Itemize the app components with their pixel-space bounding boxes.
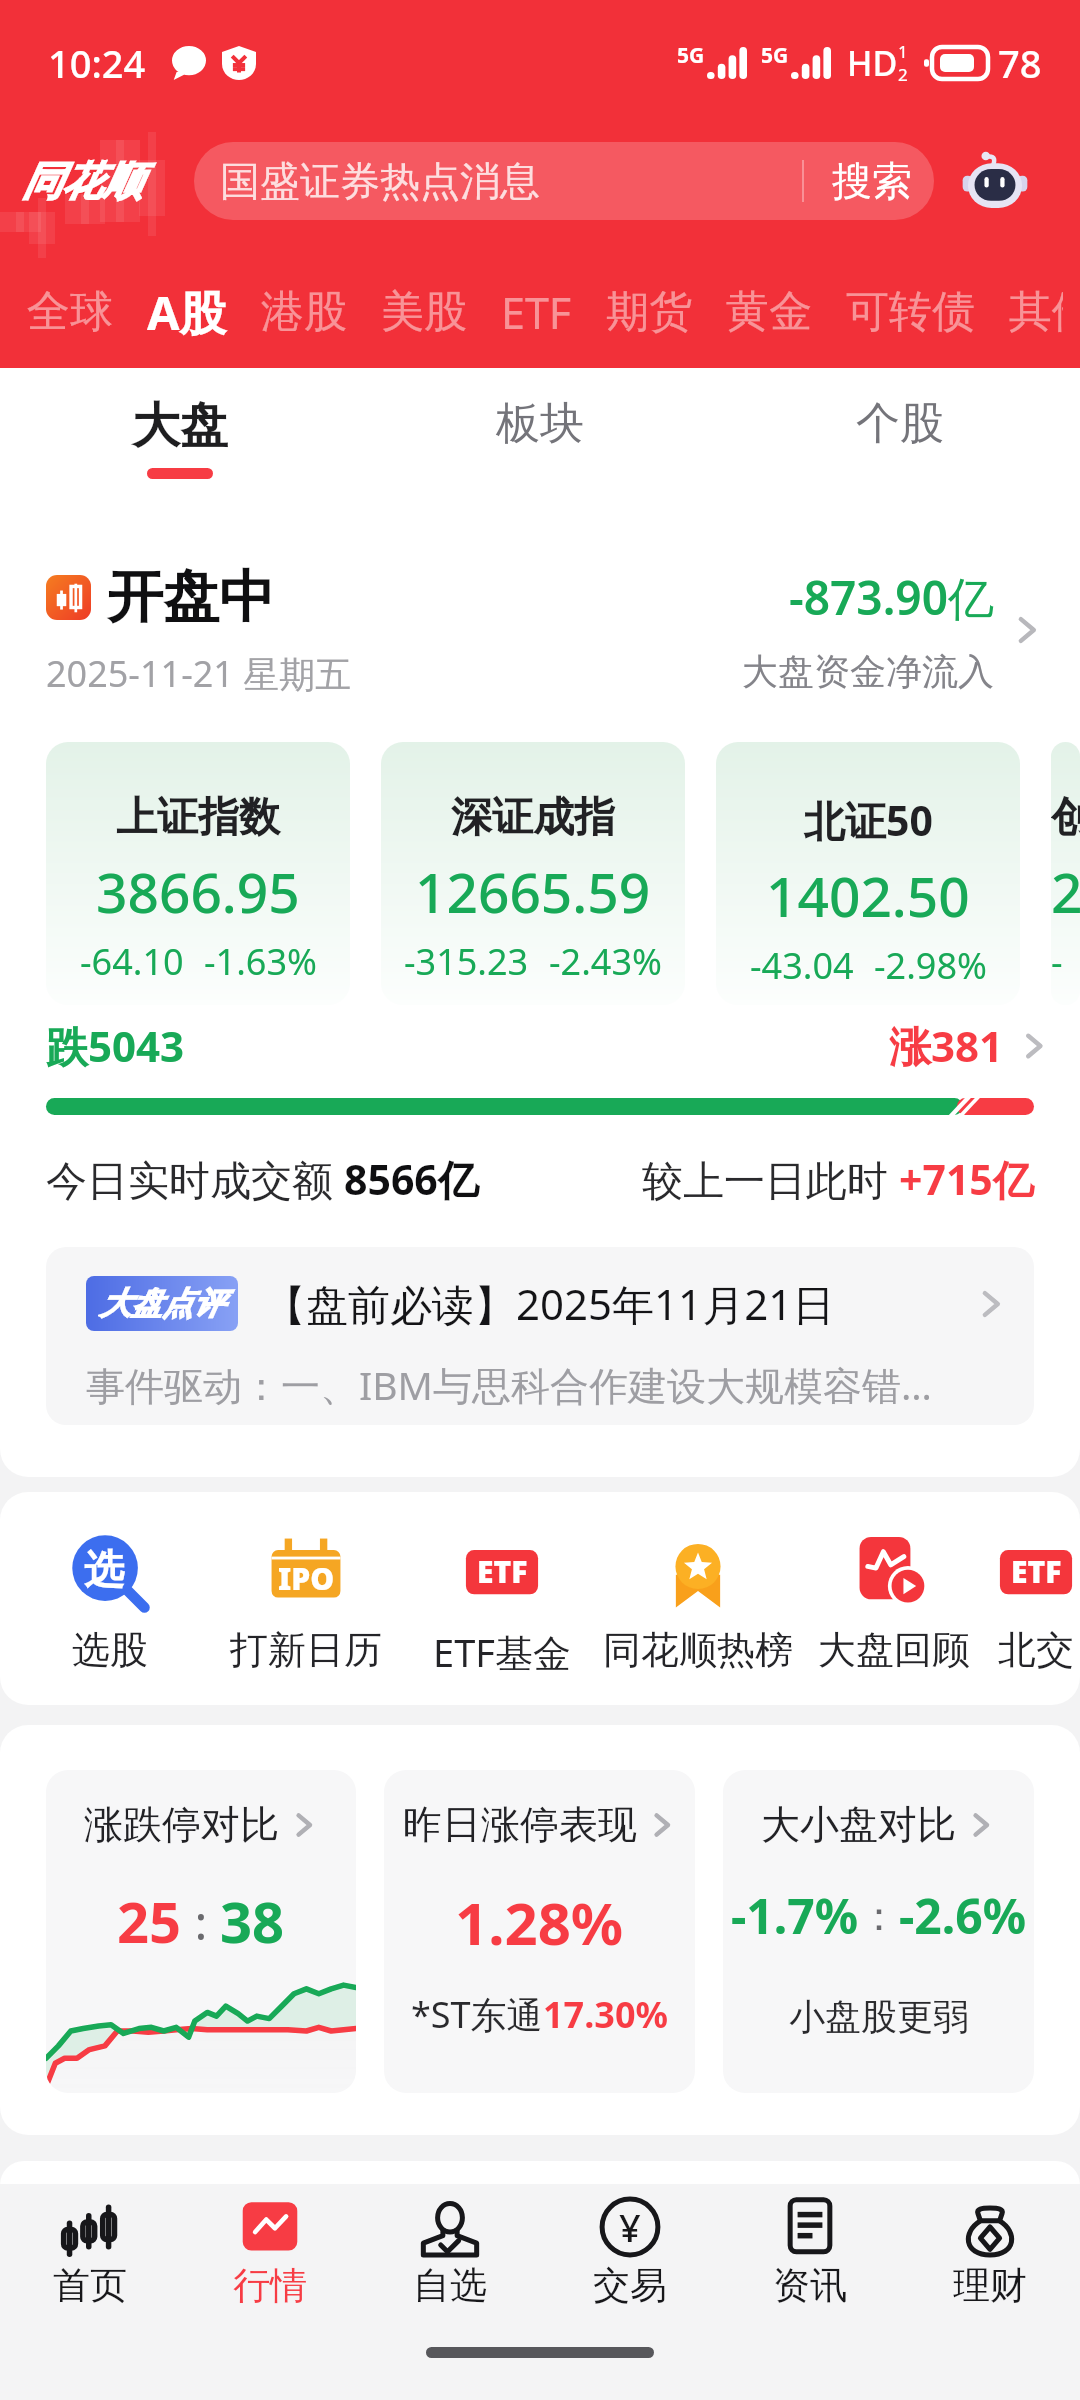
staticText: 北交 [998,1626,1074,1674]
staticText: 全球 [27,285,113,339]
staticText: 搜索 [832,156,912,206]
button[interactable]: AI assistant [958,144,1032,218]
button[interactable]: ETF [404,1532,600,1678]
staticText: 涨381 [889,1017,1004,1074]
staticText: 25 [117,1883,182,1959]
staticText: : [182,1889,220,1954]
staticText: 事件驱动：一、IBM与思科合作建设大规模容错… [86,1358,932,1411]
staticText: 10:24 [48,37,146,89]
button[interactable]: 大盘 [0,368,360,494]
button[interactable]: 选 [12,1532,208,1674]
staticText: 开盘中 [107,562,275,633]
button[interactable]: ETF [484,283,589,342]
staticText: 1402.50 [766,858,970,933]
button[interactable]: 跌5043 [46,1017,1050,1074]
staticText: 上证指数 [116,792,280,844]
staticText: -2.98% [874,941,987,990]
staticText: 可转债 [846,285,975,339]
staticText: 【盘前必读】2025年11月21日 [264,1275,835,1332]
staticText: 2 [1051,854,1080,929]
button[interactable]: 昨日涨停表现 [384,1770,695,2093]
staticText: 38 [220,1883,285,1959]
button[interactable]: 港股 [244,285,364,339]
button[interactable]: 黄金 [709,285,829,339]
staticText: 个股 [856,396,944,451]
button[interactable]: 涨跌停对比 [46,1770,356,2093]
button[interactable]: 其他 [992,285,1080,339]
staticText: 同花顺 [22,156,142,206]
staticText: 跌5043 [46,1017,185,1074]
button[interactable]: 板块 [360,368,720,494]
button[interactable]: 全球 [10,285,130,339]
staticText: -315.23 [404,937,529,986]
staticText: 大盘回顾 [818,1626,970,1674]
button[interactable]: 行情 [180,2184,360,2320]
button[interactable]: 自选 [360,2184,540,2320]
staticText: +715亿 [899,1151,1034,1207]
button[interactable]: 资讯 [720,2184,900,2320]
button[interactable]: ETF [992,1532,1080,1674]
staticText: 3866.95 [96,854,300,929]
staticText: 5G [761,41,789,70]
button[interactable]: 上证指数 [46,742,350,1005]
staticText: ¥ [619,2201,641,2253]
staticText: 5G [677,41,705,70]
button[interactable]: 深证成指 [381,742,685,1005]
staticText: 板块 [496,396,584,451]
staticText: 期货 [606,285,692,339]
staticText: 小盘股更弱 [789,1994,969,2039]
staticText: 资讯 [773,2262,847,2309]
staticText: 首页 [53,2262,127,2309]
staticText: 大盘 [132,396,228,456]
staticText: 行情 [233,2262,307,2309]
button[interactable]: 大盘点评 [46,1247,1034,1425]
staticText: 同花顺热榜 [603,1626,793,1674]
staticText: 12665.59 [415,854,651,929]
staticText: ： [859,1891,899,1941]
staticText: 2025-11-21 星期五 [46,649,352,698]
staticText: 黄金 [726,285,812,339]
button[interactable]: 北证50 [716,742,1020,1005]
staticText: 大小盘对比 [761,1800,956,1849]
staticText: 理财 [953,2262,1027,2309]
staticText: 国盛证券热点消息 [220,156,540,206]
staticText: ETF基金 [433,1626,571,1678]
staticText: 1.28% [455,1883,624,1962]
button[interactable]: IPO [208,1532,404,1674]
button[interactable]: 国盛证券热点消息 [194,142,934,220]
staticText: 大盘点评 [100,1284,224,1323]
button[interactable]: ¥ [540,2184,720,2320]
button[interactable]: 美股 [364,285,484,339]
button[interactable]: A股 [130,280,244,344]
button[interactable]: 首页 [0,2184,180,2320]
button[interactable]: 同花顺热榜 [600,1532,796,1674]
staticText: ETF [477,1551,528,1592]
staticText: 自选 [413,2262,487,2309]
button[interactable]: 创业板 [1051,742,1080,1005]
staticText: 北证50 [804,792,933,848]
staticText: -873.90亿 [789,566,994,629]
staticText: 其他 [1009,285,1063,339]
staticText: -1.63% [204,937,317,986]
button[interactable]: 个股 [720,368,1080,494]
button[interactable]: 大小盘对比 [723,1770,1034,2093]
staticText: IPO [278,1558,335,1599]
staticText: 8566亿 [344,1151,479,1207]
staticText: -2.43% [549,937,662,986]
staticText: 今日实时成交额 [46,1151,344,1207]
staticText: 涨跌停对比 [84,1800,279,1849]
staticText: 美股 [381,285,467,339]
button[interactable]: 大盘回顾 [796,1532,992,1674]
staticText: 创业板 [1051,792,1080,844]
button[interactable]: 期货 [589,285,709,339]
staticText: -43.04 [750,941,854,990]
button[interactable]: 理财 [900,2184,1080,2320]
button[interactable]: 可转债 [829,285,992,339]
staticText: *ST东通 [411,1990,543,2039]
button[interactable]: 开盘中 [46,562,1044,698]
staticText: -2.6% [899,1883,1027,1948]
staticText: 较上一日此时 [642,1151,899,1207]
staticText: 大盘资金净流入 [742,649,994,694]
staticText: 打新日历 [230,1626,382,1674]
staticText: - [1051,937,1063,986]
